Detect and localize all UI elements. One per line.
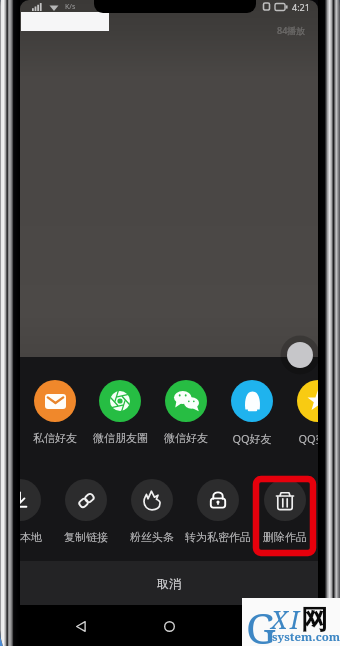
staticText: K/s (65, 2, 76, 12)
button[interactable]: 删除作品 (250, 479, 318, 544)
staticText: QQ好友 (232, 431, 272, 446)
staticText: 粉丝头条 (130, 530, 174, 544)
staticText: 私信好友 (33, 431, 77, 445)
staticText: 微信好友 (164, 431, 208, 445)
staticText: 4:21 (292, 1, 310, 13)
staticText: X (271, 602, 288, 636)
staticText: 网 (301, 603, 328, 637)
button[interactable]: 微信好友 (151, 380, 221, 445)
staticText: 取消 (157, 576, 181, 591)
button[interactable]: 保存本地 (20, 479, 55, 544)
staticText: 复制链接 (64, 530, 108, 544)
button[interactable]: 取消 (20, 561, 318, 605)
button[interactable]: 转为私密作品 (183, 479, 253, 544)
staticText: QQ空间 (298, 431, 318, 446)
button[interactable]: 粉丝头条 (117, 479, 187, 544)
staticText: 删除作品 (263, 530, 307, 544)
staticText: system.com (272, 629, 340, 645)
button[interactable]: Home (157, 614, 181, 638)
button[interactable]: 复制链接 (51, 479, 121, 544)
staticText: I (290, 602, 300, 636)
button[interactable]: 微信朋友圈 (85, 380, 155, 445)
button[interactable]: Recent apps (246, 614, 270, 638)
staticText: 微信朋友圈 (93, 431, 148, 445)
button[interactable]: 私信好友 (20, 380, 90, 445)
button[interactable]: Back (68, 614, 92, 638)
button[interactable]: QQ好友 (217, 380, 287, 446)
staticText: 转为私密作品 (185, 530, 251, 544)
staticText: 84播放 (277, 24, 306, 36)
staticText: G (246, 599, 276, 646)
staticText: 保存本地 (20, 530, 42, 544)
button[interactable]: QQ空间 (283, 380, 318, 446)
